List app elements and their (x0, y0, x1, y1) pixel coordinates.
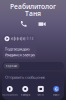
staticText: Голосовое (2, 93, 17, 96)
button[interactable]: Call (20, 20, 27, 28)
staticText: Таня (25, 9, 41, 18)
staticText: Увидимся завтра (4, 52, 34, 57)
staticText: Реабилитолог (10, 2, 56, 11)
staticText: Фото (37, 93, 44, 96)
staticText: Подтверждаю (4, 46, 29, 51)
button[interactable]: Камера (17, 86, 33, 96)
staticText: G (55, 86, 58, 92)
button[interactable]: G (48, 86, 64, 96)
button[interactable]: Фото (33, 86, 48, 96)
button[interactable]: Хорошо (3, 63, 19, 69)
staticText: Отправить сообщение (5, 74, 45, 80)
button[interactable]: Video call (38, 20, 46, 28)
staticText: Камера (21, 93, 30, 96)
staticText: Хорошо (5, 64, 17, 68)
staticText: Файл (53, 93, 60, 96)
button[interactable]: Голосовое (2, 86, 17, 96)
staticText: 0:14 (27, 37, 34, 40)
